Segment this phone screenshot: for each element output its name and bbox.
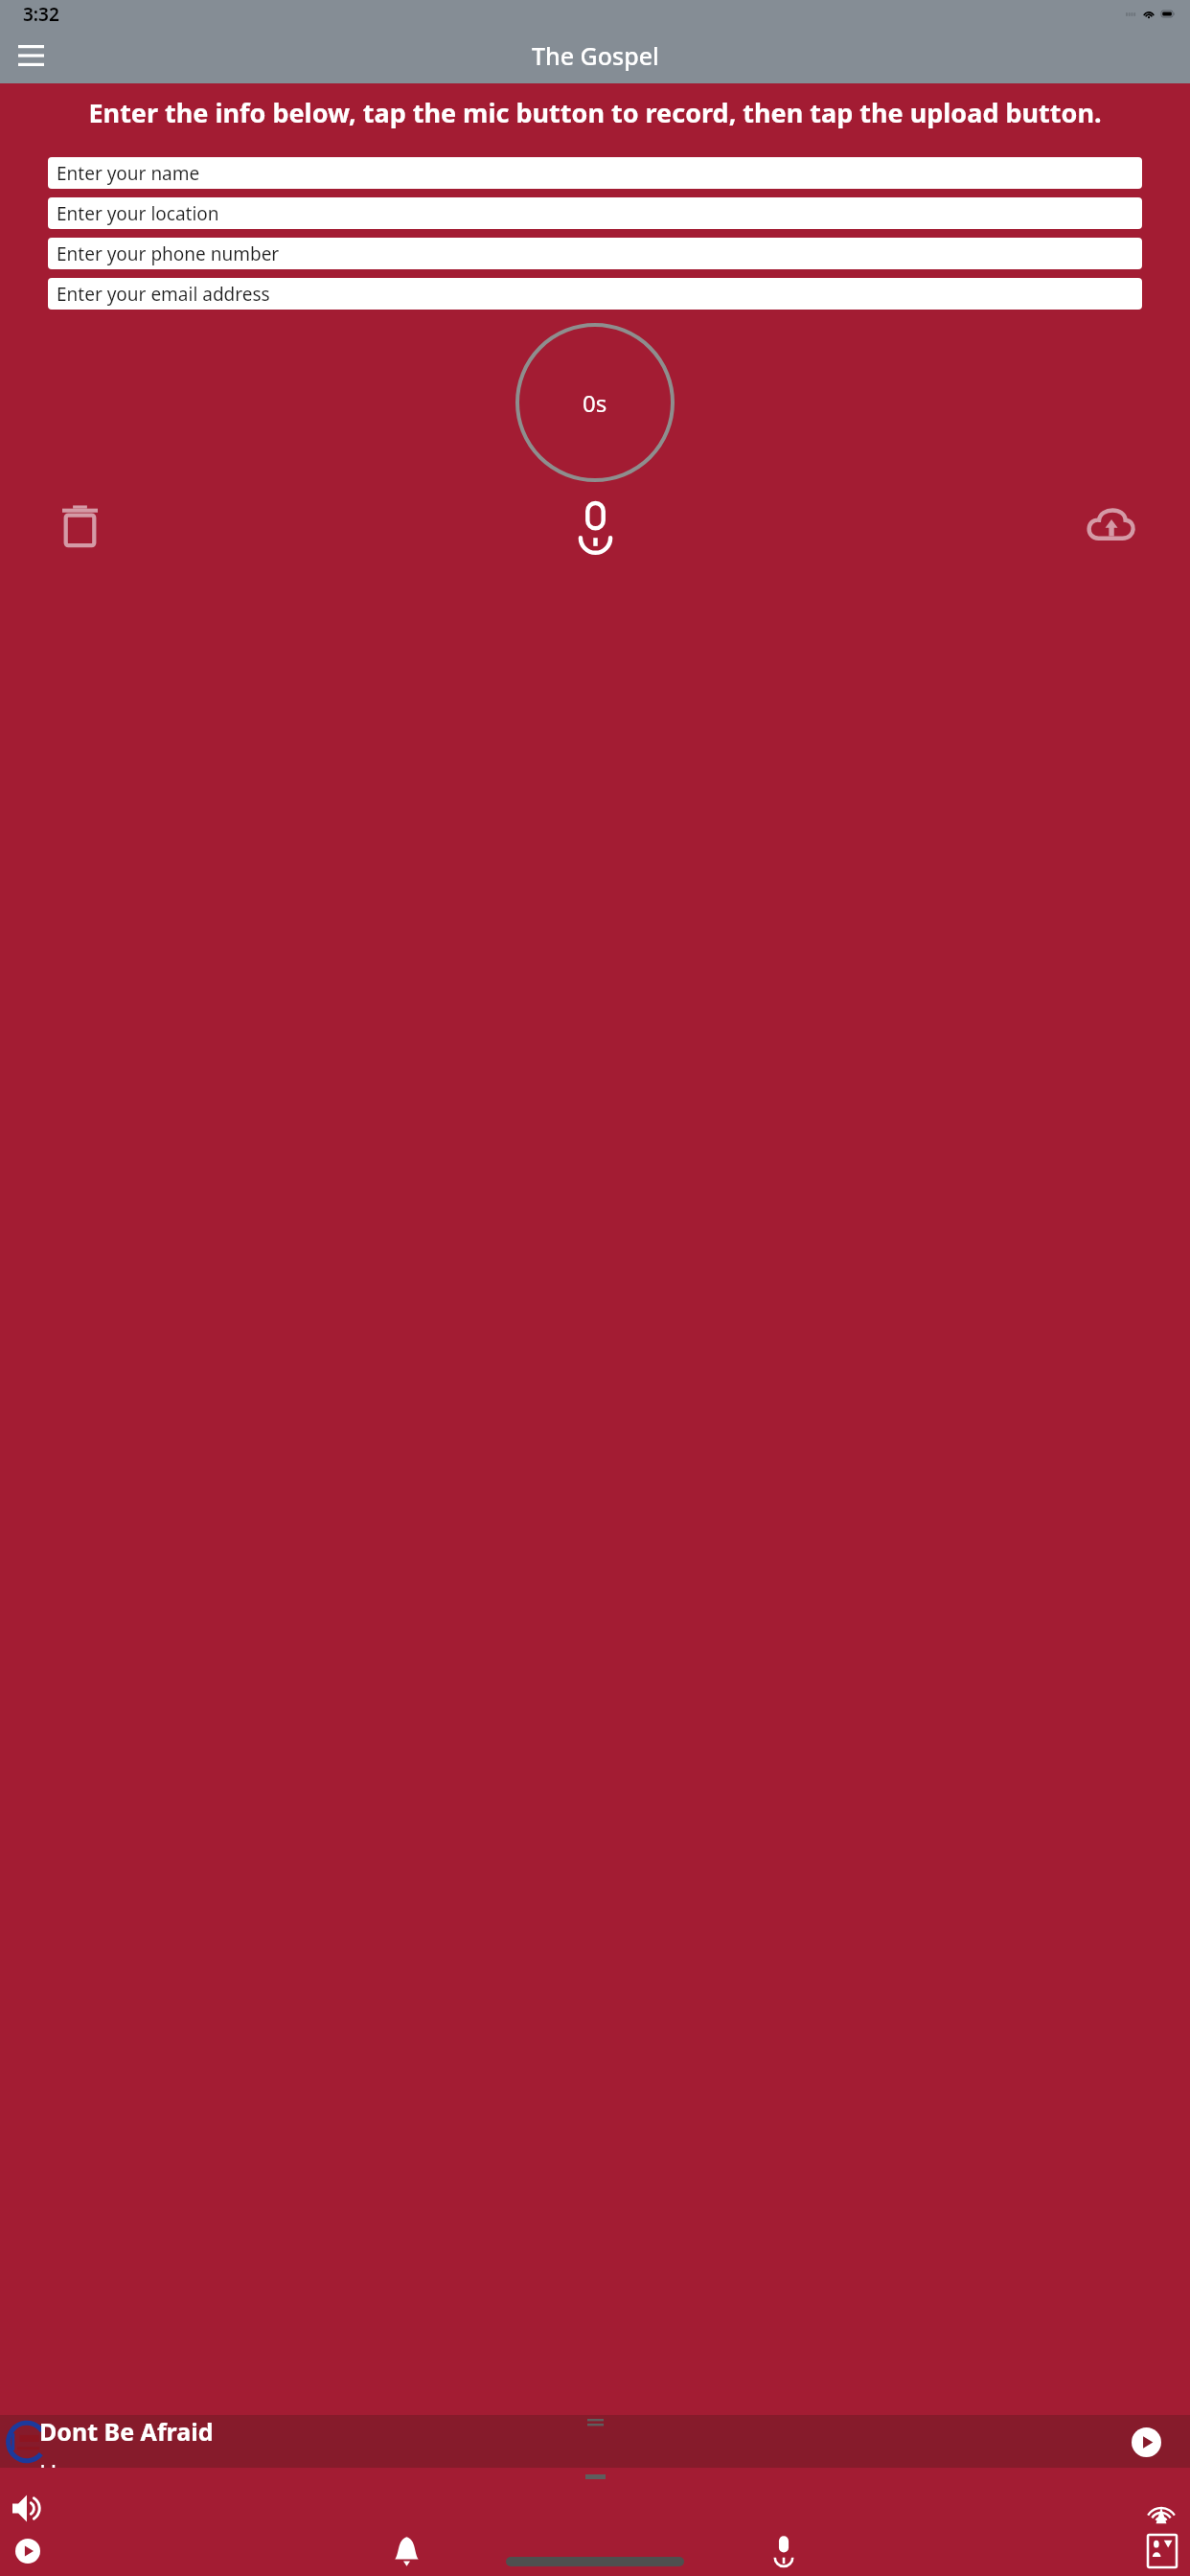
button[interactable]: Enter your phone number — [48, 238, 1142, 269]
button[interactable]: Alerts — [382, 2527, 430, 2575]
button[interactable]: Play — [4, 2527, 52, 2575]
staticText: 0s — [583, 387, 607, 419]
button[interactable]: Enter your location — [48, 197, 1142, 229]
button[interactable]: Dont Be Afraid — [0, 2415, 1190, 2468]
button[interactable]: Record message — [760, 2527, 808, 2575]
button[interactable]: Delete recording — [44, 490, 115, 561]
button[interactable]: Enter your name — [48, 157, 1142, 189]
staticText: Enter your email address — [57, 282, 270, 307]
button[interactable]: Volume — [4, 2483, 54, 2533]
button[interactable]: Upload recording — [1075, 490, 1146, 561]
button[interactable]: Enter your email address — [48, 278, 1142, 310]
staticText: Enter your name — [57, 161, 200, 186]
button[interactable]: Contact — [1138, 2527, 1186, 2575]
staticText: 3:32 — [23, 2, 59, 27]
button[interactable]: Play — [1125, 2421, 1167, 2463]
staticText: Hyssongs — [39, 2456, 149, 2468]
button[interactable]: Recording timer — [515, 323, 675, 482]
button[interactable]: Record — [560, 490, 630, 561]
staticText: Enter the info below, tap the mic button… — [88, 95, 1102, 130]
staticText: The Gospel — [532, 39, 659, 72]
staticText: Dont Be Afraid — [39, 2415, 214, 2448]
button[interactable]: Menu — [4, 29, 57, 82]
staticText: Enter your location — [57, 201, 219, 226]
button[interactable]: Broadcast — [1136, 2483, 1186, 2533]
staticText: Enter your phone number — [57, 241, 280, 266]
